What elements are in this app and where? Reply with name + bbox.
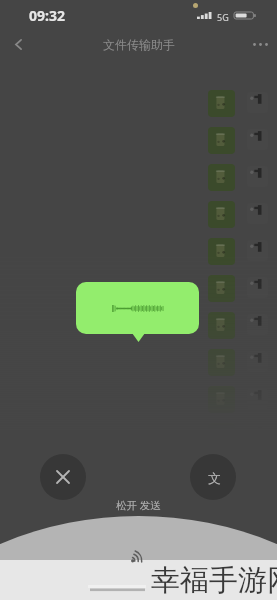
staticText: 松开 发送 [116, 498, 161, 512]
button[interactable]: Cancel recording [40, 454, 86, 500]
button[interactable]: Convert voice to text [190, 454, 236, 500]
button[interactable]: Back [1, 27, 35, 61]
staticText: 5G [217, 11, 229, 23]
staticText: 文 [208, 470, 221, 486]
button[interactable]: More options [243, 27, 277, 61]
staticText: 09:32 [29, 6, 65, 25]
other: Recording [129, 551, 143, 565]
staticText: 幸福手游网 [151, 562, 277, 599]
staticText: 文件传输助手 [103, 37, 175, 52]
